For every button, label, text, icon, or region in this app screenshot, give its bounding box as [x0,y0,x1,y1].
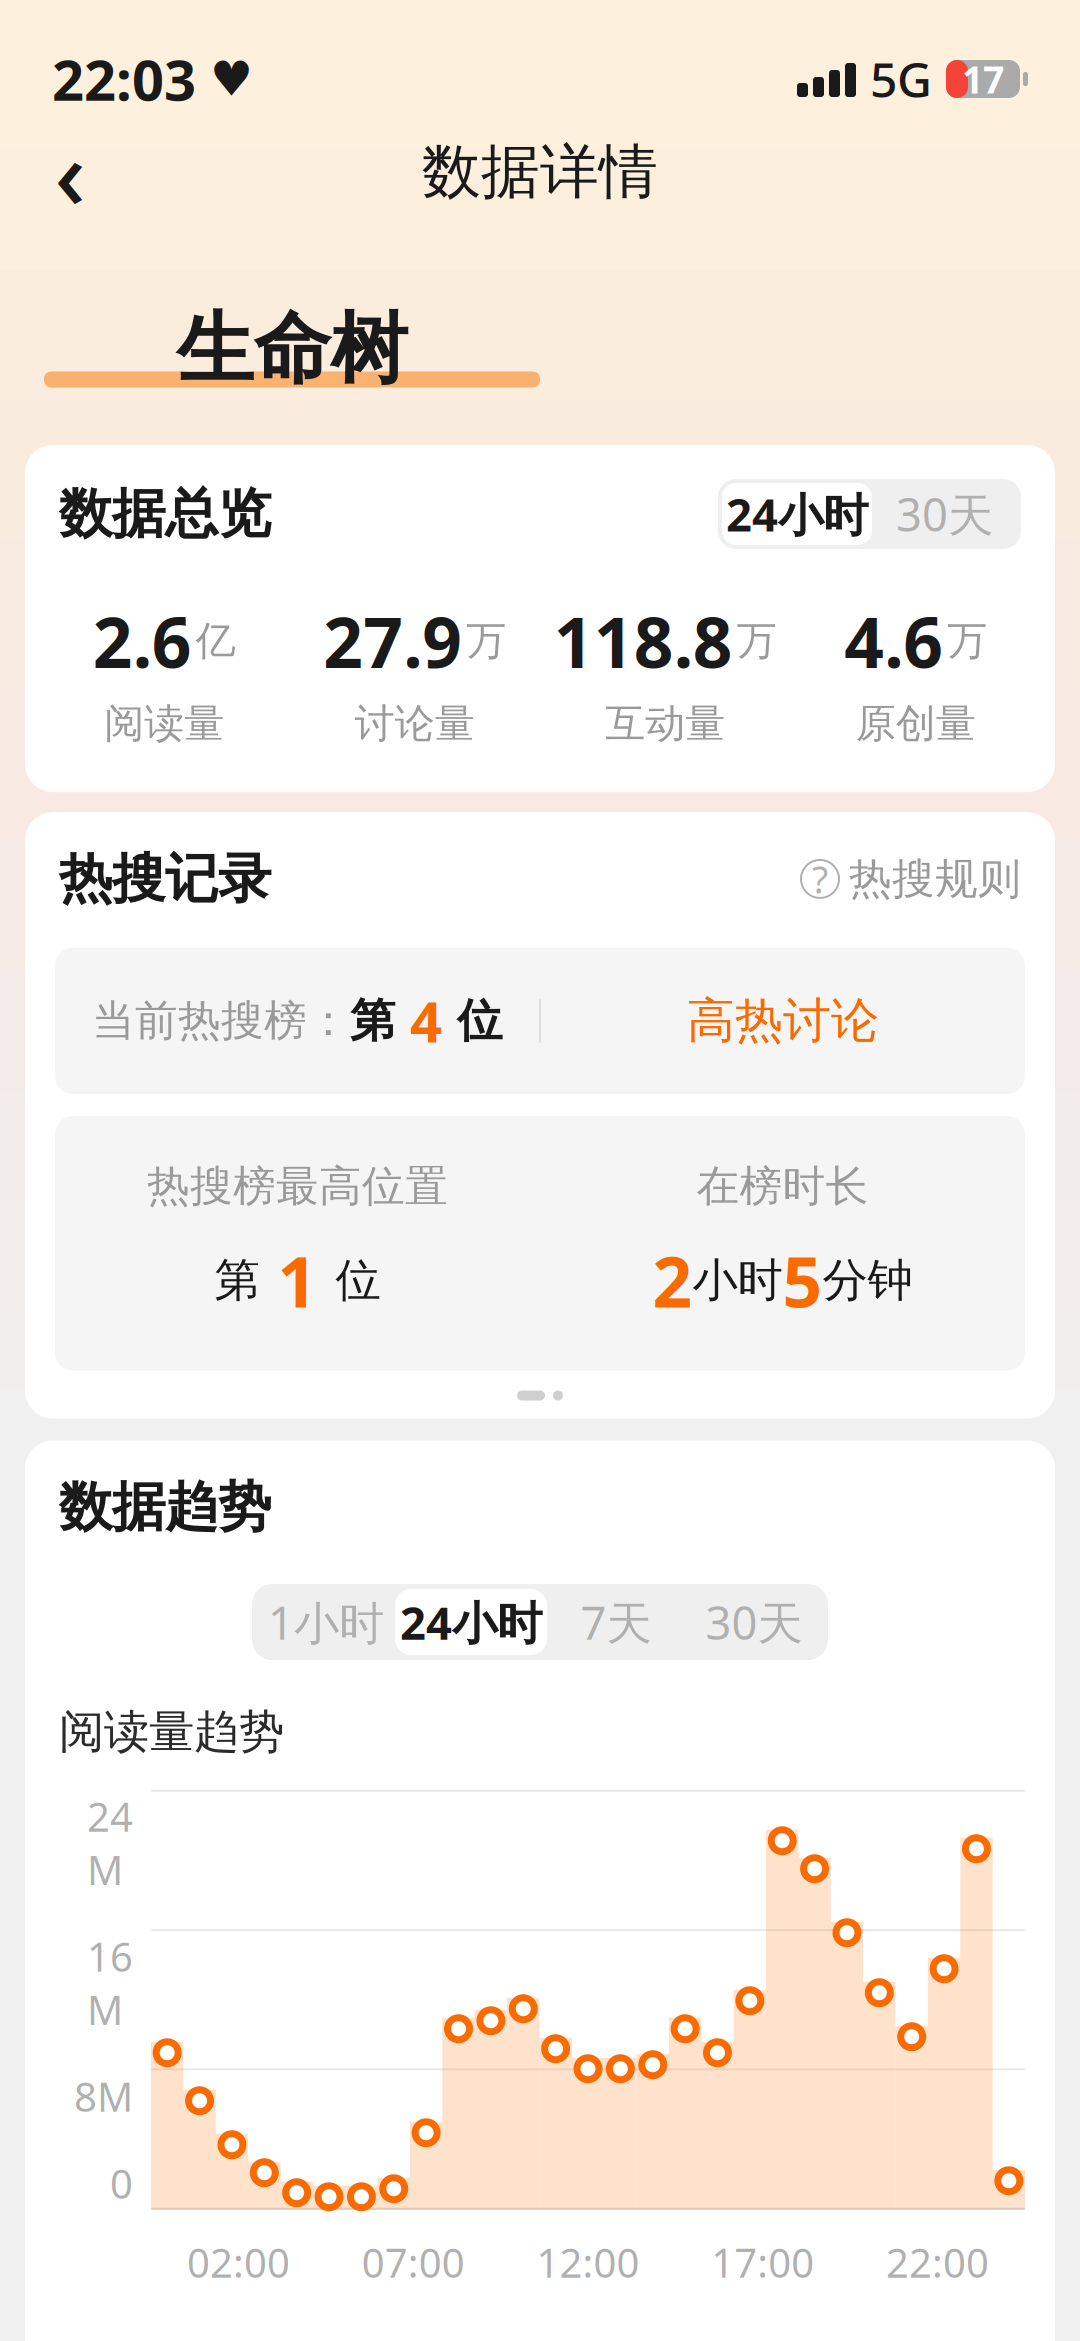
staticText: 5G [870,47,932,111]
staticText: 热搜规则 [849,853,1021,905]
button[interactable]: 30天 [872,483,1017,545]
staticText: 22:03 [52,42,196,116]
staticText: 5 [782,1234,822,1327]
staticText: 阅读量趋势 [59,1704,284,1760]
staticText: 互动量 [605,699,725,748]
staticText: 热搜榜最高位置 [147,1160,448,1212]
staticText: 原创量 [856,699,976,748]
staticText: 1小时 [268,1592,384,1652]
staticText: 数据总览 [59,481,271,547]
staticText: 2 [652,1234,692,1327]
staticText: 0 [110,2157,133,2210]
staticText: 在榜时长 [696,1160,868,1212]
staticText: 17 [962,54,1004,104]
staticText: ‹ [54,108,85,236]
staticText: 30天 [705,1592,802,1652]
staticText: 22:00 [886,2236,989,2289]
button[interactable]: 返回 [22,124,118,220]
staticText: 16M [87,1930,133,2036]
staticText: ♥ [210,52,253,106]
button[interactable]: 7天 [547,1589,685,1655]
staticText: 07:00 [362,2236,465,2289]
staticText: ? [812,854,828,904]
staticText: 数据详情 [422,136,658,208]
staticText: 万 [466,616,506,666]
staticText: 7天 [580,1592,651,1652]
staticText: 分钟 [822,1253,912,1308]
staticText: 24M [87,1790,133,1896]
button[interactable]: 24小时 [722,483,872,545]
staticText: 热搜记录 [59,846,271,912]
staticText: 位 [335,1253,380,1308]
button[interactable]: ? [801,853,1021,905]
staticText: 24小时 [400,1592,542,1652]
staticText: 4 [395,984,457,1058]
button[interactable]: 30天 [685,1589,823,1655]
staticText: 30天 [896,484,993,544]
staticText: 1 [259,1234,335,1327]
staticText: 24小时 [726,484,868,544]
button[interactable]: 24小时 [395,1589,547,1655]
staticText: 亿 [196,616,236,666]
staticText: 数据趋势 [59,1474,271,1540]
staticText: 位 [457,993,502,1049]
staticText: 高热讨论 [687,991,879,1050]
staticText: 万 [737,616,777,666]
staticText: 万 [947,616,987,666]
staticText: 8M [74,2070,133,2123]
staticText: 17:00 [711,2236,814,2289]
staticText: 当前热搜榜： [92,995,350,1047]
staticText: 第 [350,993,395,1049]
button[interactable]: 1小时 [257,1589,395,1655]
staticText: 27.9 [323,595,462,687]
staticText: 阅读量 [104,699,224,748]
staticText: 118.8 [554,595,733,687]
staticText: 02:00 [187,2236,290,2289]
staticText: 小时 [692,1253,782,1308]
staticText: 第 [214,1253,259,1308]
staticText: 讨论量 [355,699,475,748]
staticText: 12:00 [536,2236,639,2289]
staticText: 2.6 [93,595,192,687]
staticText: 生命树 [176,302,407,397]
staticText: 4.6 [844,595,943,687]
